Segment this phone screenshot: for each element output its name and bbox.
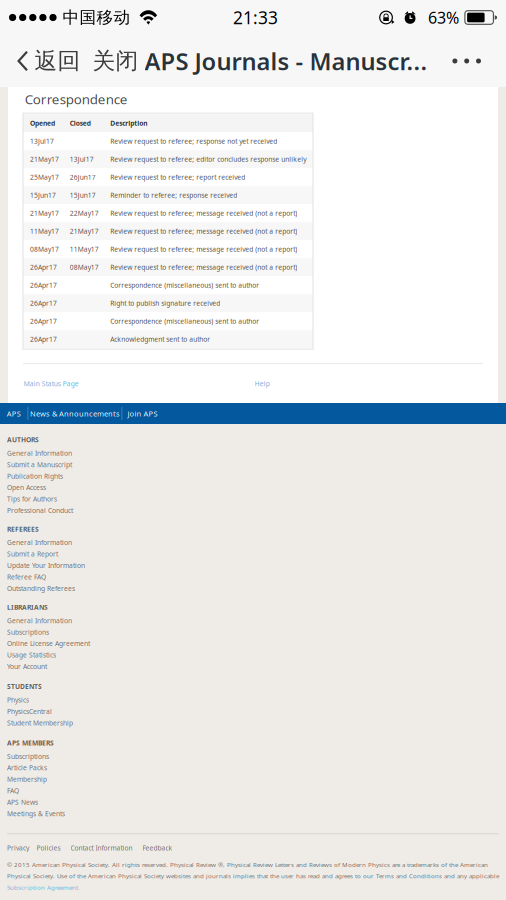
staticText: Usage Statistics: [7, 650, 56, 659]
staticText: 26Jun17: [70, 173, 96, 182]
button[interactable]: 关闭: [87, 35, 147, 87]
button[interactable]: APS News: [7, 796, 207, 808]
staticText: Policies: [36, 843, 60, 852]
staticText: 26Apr17: [30, 335, 57, 344]
staticText: 08May17: [30, 245, 59, 254]
button[interactable]: Student Membership: [7, 717, 207, 728]
staticText: Meetings & Events: [7, 809, 65, 818]
staticText: 13Jul17: [70, 155, 94, 164]
staticText: Open Access: [7, 483, 46, 492]
staticText: Correspondence: [25, 90, 128, 108]
staticText: News & Announcements: [30, 408, 120, 419]
staticText: 21May17: [30, 209, 59, 218]
staticText: APS MEMBERS: [7, 738, 54, 747]
button[interactable]: Join APS: [122, 403, 162, 424]
button[interactable]: 返回: [0, 35, 87, 87]
button[interactable]: Your Account: [7, 661, 207, 672]
staticText: Acknowledgment sent to author: [110, 335, 210, 344]
staticText: PhysicsCentral: [7, 707, 52, 716]
staticText: 关闭: [93, 47, 139, 75]
button[interactable]: Publication Rights: [7, 470, 207, 482]
button[interactable]: Tips for Authors: [7, 493, 207, 505]
staticText: Subscription Agreement.: [7, 883, 80, 891]
button[interactable]: Submit a Report: [7, 548, 207, 560]
staticText: FAQ: [7, 786, 19, 795]
button[interactable]: General Information: [7, 445, 207, 459]
staticText: 11May17: [70, 245, 99, 254]
button[interactable]: Main Status Page: [24, 379, 79, 388]
button[interactable]: PhysicsCentral: [7, 706, 207, 717]
button[interactable]: Contact Information: [70, 843, 132, 852]
button[interactable]: Subscriptions: [7, 749, 207, 762]
button[interactable]: Physics: [7, 692, 207, 706]
staticText: Main Status Page: [24, 379, 79, 388]
button[interactable]: General Information: [7, 613, 207, 626]
staticText: Feedback: [142, 843, 172, 852]
staticText: Outstanding Referees: [7, 584, 75, 593]
staticText: 21May17: [30, 155, 59, 164]
button[interactable]: FAQ: [7, 785, 207, 796]
button[interactable]: Privacy: [7, 843, 29, 852]
button[interactable]: Meetings & Events: [7, 808, 207, 819]
staticText: APS Journals - Manuscr...: [145, 45, 428, 77]
staticText: Review request to referee; message recei…: [110, 227, 297, 236]
button[interactable]: Subscriptions: [7, 626, 207, 638]
staticText: Join APS: [127, 408, 157, 419]
staticText: REFEREES: [7, 524, 39, 534]
staticText: 26Apr17: [30, 299, 57, 308]
staticText: 22May17: [70, 209, 99, 218]
button[interactable]: Update Your Information: [7, 560, 207, 571]
button[interactable]: Article Packs: [7, 762, 207, 773]
button[interactable]: Submit a Manuscript: [7, 459, 207, 470]
staticText: Subscriptions: [7, 752, 49, 761]
staticText: 中国移动: [63, 7, 131, 28]
staticText: Physical Society. Use of the American Ph…: [7, 872, 499, 880]
button[interactable]: Membership: [7, 773, 207, 785]
staticText: Update Your Information: [7, 561, 85, 570]
staticText: 26Apr17: [30, 263, 57, 272]
staticText: Referee FAQ: [7, 572, 46, 581]
staticText: 13Jul17: [30, 137, 54, 146]
staticText: Opened: [30, 119, 55, 128]
staticText: Online License Agreement: [7, 639, 90, 648]
staticText: © 2015 American Physical Society. All ri…: [7, 860, 488, 869]
staticText: APS News: [7, 798, 38, 807]
button[interactable]: Policies: [36, 843, 60, 852]
staticText: Correspondence (miscellaneous) sent to a…: [110, 281, 259, 290]
button[interactable]: Outstanding Referees: [7, 583, 207, 594]
staticText: APS: [7, 408, 21, 419]
button[interactable]: Open Access: [7, 482, 207, 493]
staticText: Article Packs: [7, 763, 47, 772]
button[interactable]: News & Announcements: [28, 403, 121, 424]
button[interactable]: Professional Conduct: [7, 505, 207, 516]
staticText: Submit a Manuscript: [7, 460, 72, 469]
button[interactable]: Usage Statistics: [7, 649, 207, 661]
staticText: 返回: [35, 47, 81, 75]
staticText: Professional Conduct: [7, 506, 73, 515]
button[interactable]: Referee FAQ: [7, 571, 207, 582]
staticText: Publication Rights: [7, 471, 63, 481]
staticText: Student Membership: [7, 718, 73, 727]
staticText: Review request to referee; editor conclu…: [110, 155, 306, 164]
staticText: Help: [255, 379, 270, 388]
staticText: 08May17: [70, 263, 99, 272]
staticText: Reminder to referee; response received: [110, 191, 237, 200]
staticText: Review request to referee; report receiv…: [110, 173, 245, 182]
staticText: General Information: [7, 616, 72, 625]
button[interactable]: APS: [0, 403, 27, 424]
button[interactable]: Feedback: [142, 843, 172, 852]
staticText: STUDENTS: [7, 682, 42, 691]
button[interactable]: General Information: [7, 535, 207, 548]
staticText: LIBRARIANS: [7, 603, 48, 612]
button[interactable]: More options: [438, 35, 506, 87]
staticText: Review request to referee; response not …: [110, 137, 277, 146]
button[interactable]: Online License Agreement: [7, 638, 207, 649]
staticText: Right to publish signature received: [110, 299, 220, 308]
staticText: 11May17: [30, 227, 59, 236]
staticText: Review request to referee; message recei…: [110, 209, 297, 218]
staticText: Correspondence (miscellaneous) sent to a…: [110, 317, 259, 326]
staticText: Description: [110, 119, 147, 128]
staticText: AUTHORS: [7, 435, 39, 444]
staticText: Submit a Report: [7, 549, 58, 558]
button[interactable]: Help: [255, 379, 270, 388]
